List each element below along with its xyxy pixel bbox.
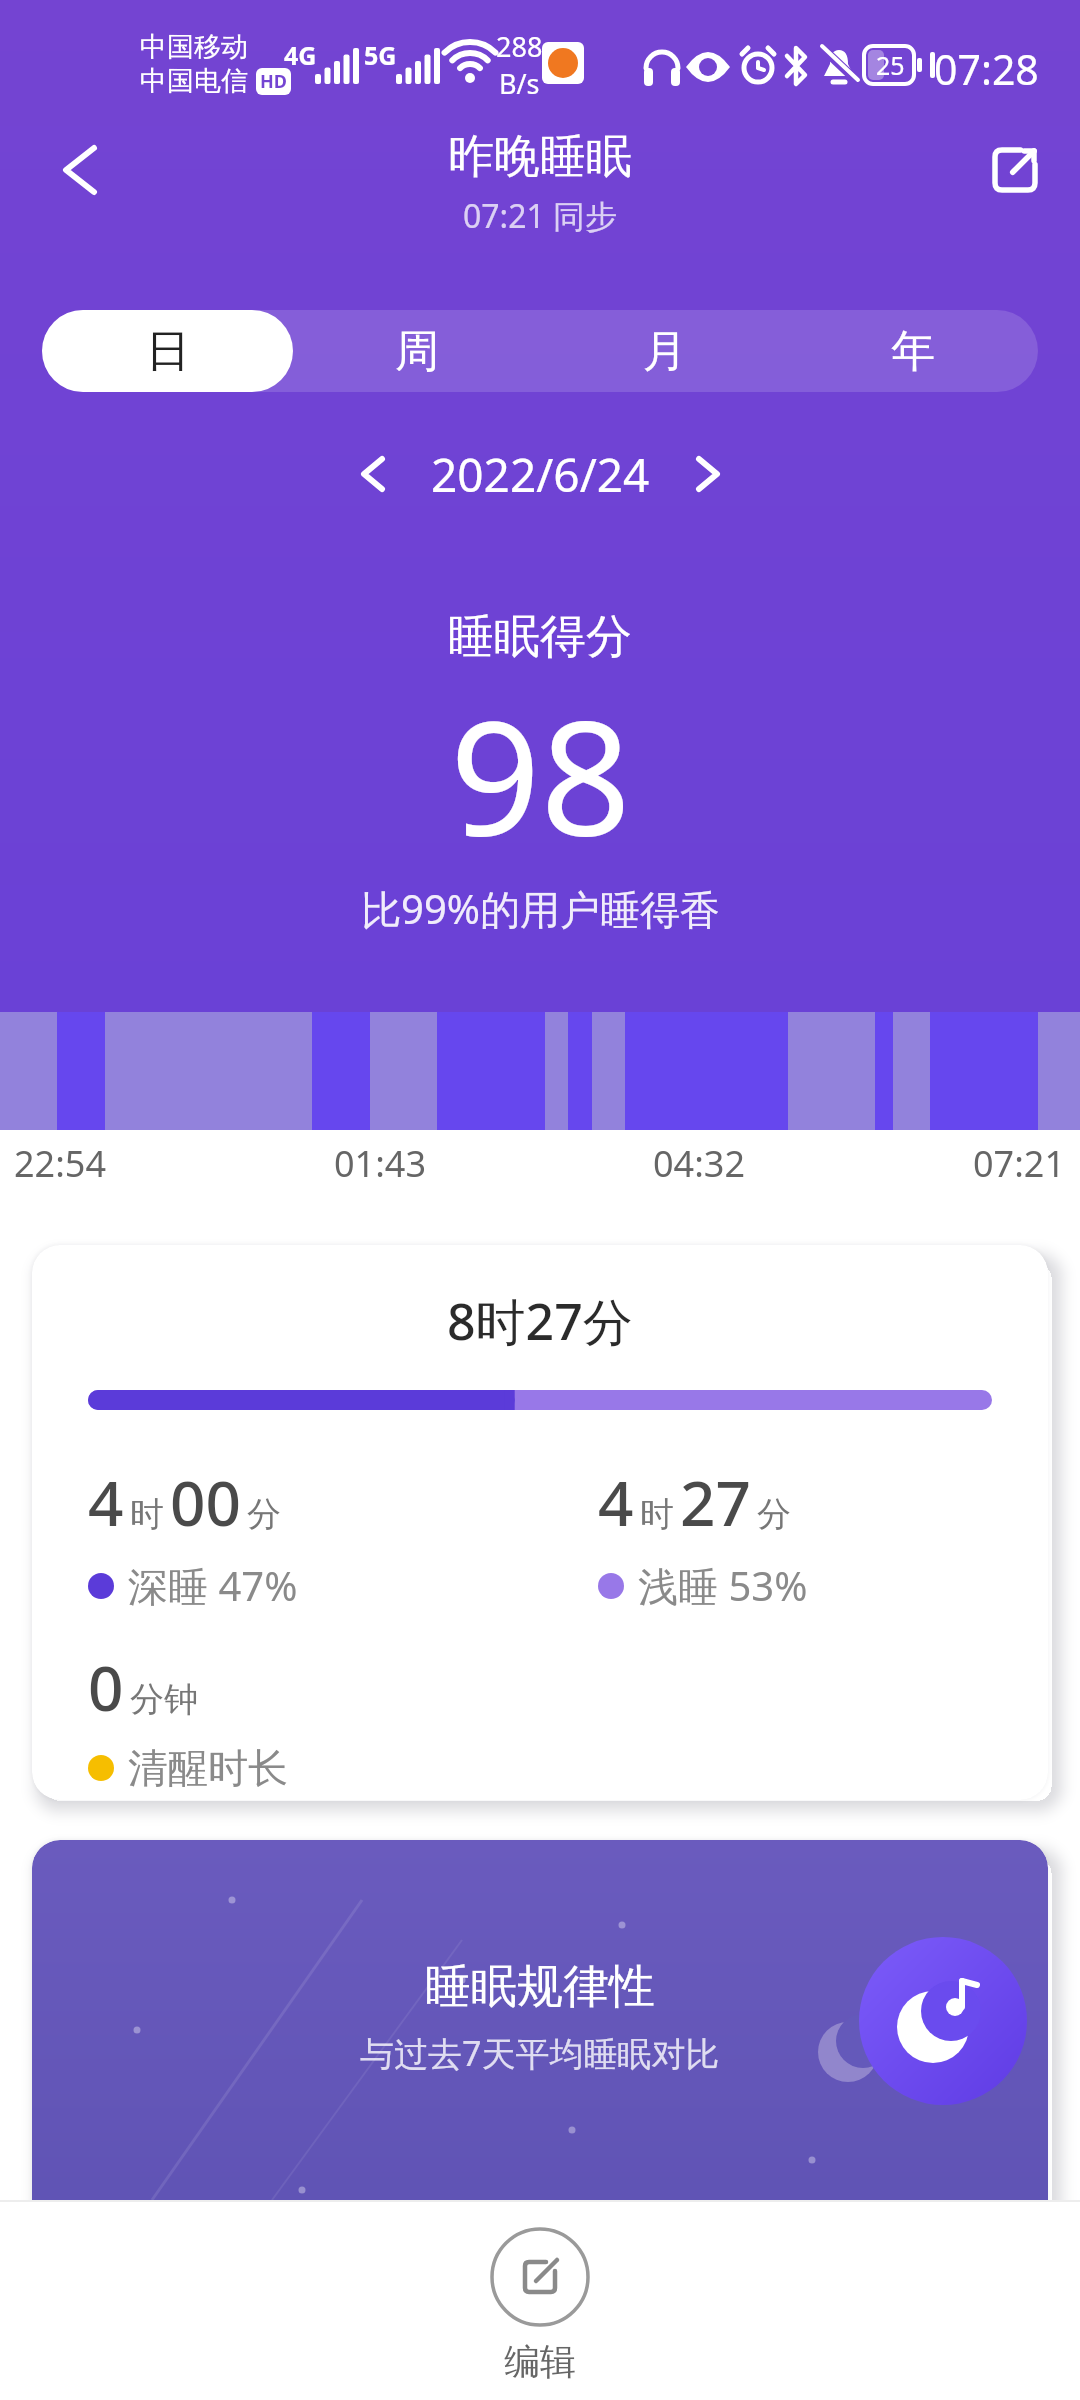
staticText: 与过去7天平均睡眠对比 — [360, 2030, 720, 2076]
staticText: 288 — [496, 28, 543, 65]
staticText: 比99%的用户睡得香 — [361, 881, 720, 936]
staticText: 清醒时长 — [128, 1743, 288, 1793]
button[interactable]: 日 — [42, 310, 293, 392]
staticText: 年 — [891, 324, 935, 379]
staticText: 04:32 — [653, 1139, 746, 1188]
staticText: 25 — [876, 48, 905, 82]
staticText: 时 — [640, 1493, 674, 1536]
button[interactable] — [40, 130, 120, 210]
staticText: 中国移动 — [140, 30, 248, 64]
staticText: 07:21 — [973, 1139, 1066, 1188]
button[interactable] — [859, 1937, 1027, 2105]
staticText: 4 — [88, 1460, 124, 1544]
staticText: 27 — [680, 1460, 751, 1544]
staticText: 日 — [146, 324, 190, 379]
staticText: 编辑 — [504, 2339, 576, 2384]
staticText: 00 — [170, 1460, 241, 1544]
staticText: 5G — [364, 38, 397, 72]
staticText: 07:21 同步 — [463, 194, 618, 238]
staticText: 0 — [88, 1645, 124, 1729]
staticText: 22:54 — [14, 1139, 107, 1188]
staticText: 时 — [130, 1493, 164, 1536]
staticText: 睡眠得分 — [448, 608, 632, 666]
staticText: 周 — [395, 324, 439, 379]
button[interactable] — [347, 448, 399, 500]
staticText: 昨晚睡眠 — [448, 128, 632, 186]
staticText: 分钟 — [130, 1678, 198, 1721]
staticText: B/s — [499, 65, 540, 102]
button[interactable] — [682, 448, 734, 500]
staticText: 分 — [247, 1493, 281, 1536]
staticText: HD — [260, 69, 287, 94]
staticText: 分 — [757, 1493, 791, 1536]
button[interactable]: 睡眠规律性 — [32, 1840, 1048, 2230]
button[interactable]: 月 — [541, 310, 789, 392]
staticText: 8时27分 — [447, 1287, 633, 1355]
staticText: 中国电信 — [140, 64, 248, 98]
staticText: 深睡 47% — [128, 1558, 298, 1613]
staticText: 01:43 — [334, 1139, 427, 1188]
button[interactable]: 年 — [789, 310, 1037, 392]
staticText: 睡眠规律性 — [425, 1958, 655, 2016]
button[interactable] — [975, 130, 1055, 210]
staticText: 98 — [450, 666, 631, 881]
button[interactable]: 编辑 — [490, 2227, 590, 2384]
staticText: 浅睡 53% — [638, 1558, 808, 1613]
staticText: 2022/6/24 — [431, 443, 650, 506]
staticText: 4G — [284, 38, 317, 72]
staticText: 月 — [643, 324, 687, 379]
button[interactable]: 周 — [293, 310, 541, 392]
staticText: 4 — [598, 1460, 634, 1544]
staticText: 07:28 — [934, 41, 1039, 97]
